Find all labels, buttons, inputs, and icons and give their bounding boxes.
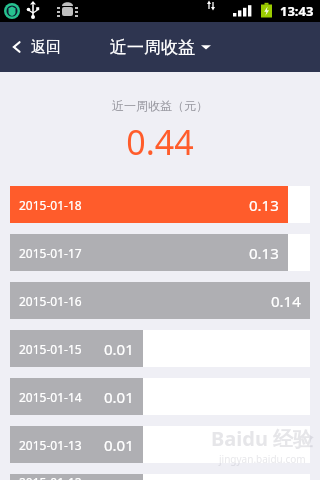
staticText: 近一周收益（元） [112, 98, 208, 113]
staticText: 2015-01-13 [19, 437, 82, 453]
staticText: 2015-01-12 [19, 474, 82, 480]
staticText: 2015-01-14 [19, 389, 82, 405]
staticText: 0.13 [249, 195, 279, 215]
staticText: 0.01 [104, 387, 134, 407]
staticText: 近一周收益 [110, 37, 195, 58]
staticText: 2015-01-17 [19, 245, 82, 261]
button[interactable]: 2015-01-13 [10, 426, 310, 463]
button[interactable]: 返回 [0, 22, 75, 72]
button[interactable]: 2015-01-14 [10, 378, 310, 415]
staticText: 0.13 [249, 243, 279, 263]
button[interactable]: 2015-01-16 [10, 282, 310, 319]
button[interactable]: 2015-01-15 [10, 330, 310, 367]
staticText: 2015-01-18 [19, 197, 82, 213]
staticText: 返回 [31, 38, 61, 57]
staticText: 0.14 [271, 291, 301, 311]
button[interactable]: 2015-01-12 [10, 474, 310, 480]
staticText: 0.01 [104, 339, 134, 359]
button[interactable]: 2015-01-18 [10, 186, 310, 223]
staticText: jingyan.baidu.com [219, 452, 306, 466]
staticText: 2015-01-15 [19, 341, 82, 357]
staticText: 0.44 [126, 119, 194, 165]
staticText: 0.01 [104, 435, 134, 455]
staticText: 13:43 [280, 2, 314, 20]
button[interactable]: 近一周收益 [102, 22, 219, 72]
staticText: 2015-01-16 [19, 293, 82, 309]
staticText: Baidu 经验 [211, 425, 314, 452]
button[interactable]: 2015-01-17 [10, 234, 310, 271]
